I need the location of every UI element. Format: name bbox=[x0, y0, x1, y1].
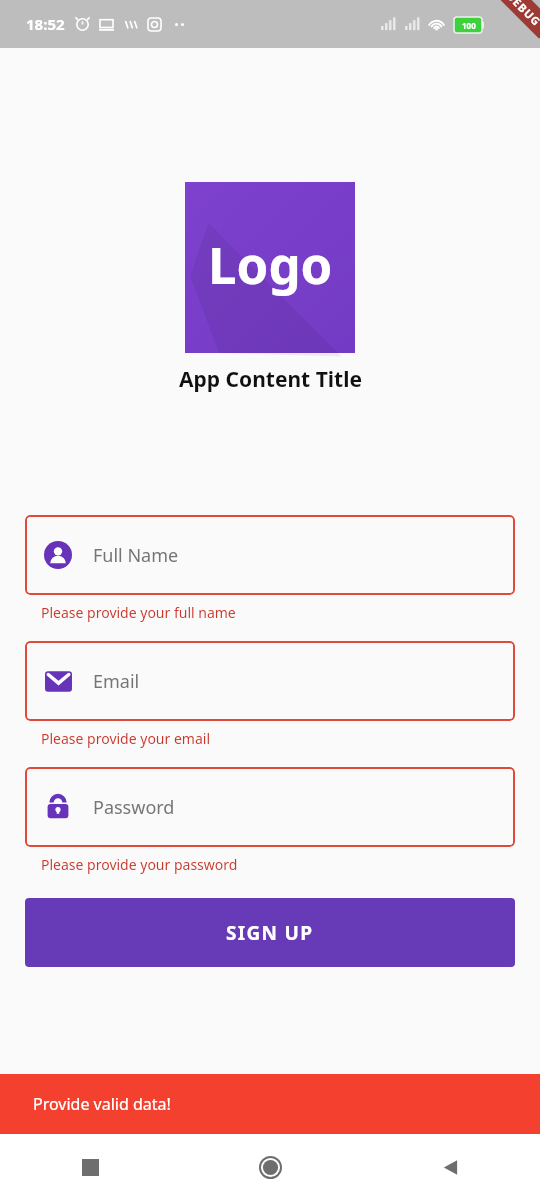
button[interactable]: Provide valid data! bbox=[0, 1074, 540, 1134]
staticText: Please provide your password bbox=[41, 855, 238, 874]
staticText: Please provide your full name bbox=[41, 603, 236, 622]
staticText: Email bbox=[93, 669, 140, 694]
staticText: SIGN UP bbox=[226, 920, 314, 946]
staticText: 18:52 bbox=[26, 14, 65, 34]
button[interactable]: SIGN UP bbox=[25, 898, 515, 967]
staticText: Provide valid data! bbox=[33, 1093, 171, 1115]
staticText: 100 bbox=[462, 20, 476, 31]
staticText: Password bbox=[93, 795, 175, 820]
button[interactable]: Home bbox=[180, 1134, 360, 1200]
button[interactable]: Password field bbox=[25, 767, 515, 847]
staticText: App Content Title bbox=[179, 365, 362, 394]
staticText: DEBUG bbox=[503, 0, 540, 29]
button[interactable]: Recent apps bbox=[0, 1134, 180, 1200]
button[interactable]: Email field bbox=[25, 641, 515, 721]
staticText: Please provide your email bbox=[41, 729, 210, 748]
staticText: Full Name bbox=[93, 543, 179, 568]
button[interactable]: Back bbox=[360, 1134, 540, 1200]
staticText: Logo bbox=[208, 229, 333, 298]
button[interactable]: Full name field bbox=[25, 515, 515, 595]
